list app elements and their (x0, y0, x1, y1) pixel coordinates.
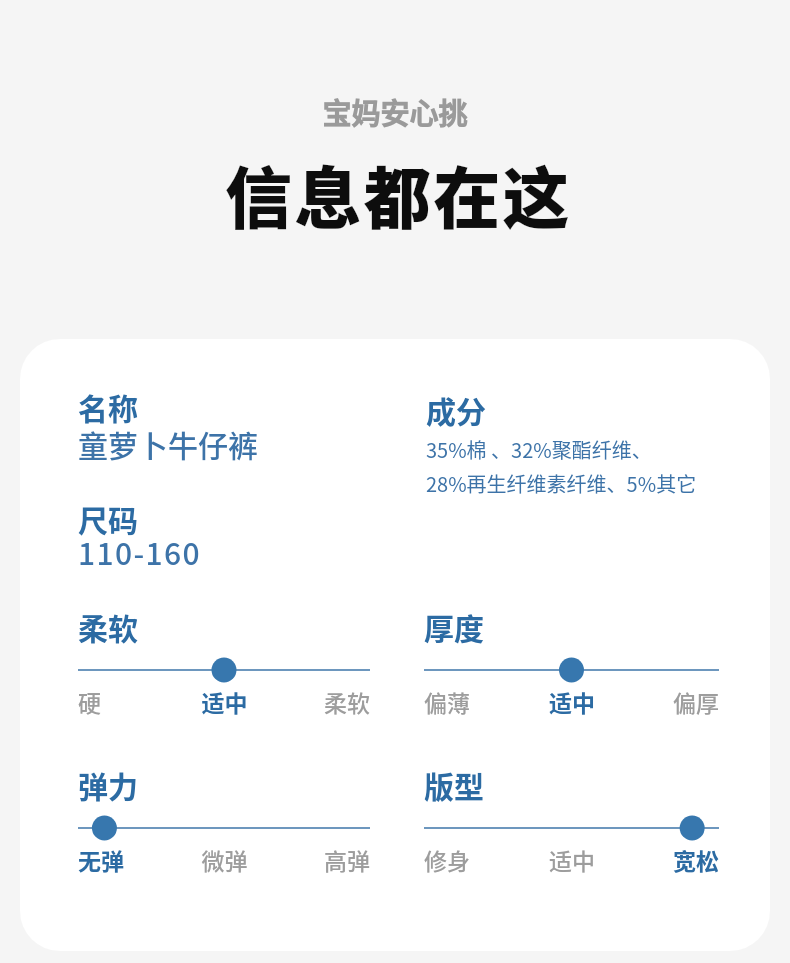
staticText: 无弹 (78, 843, 176, 876)
staticText: 信息都在这 (225, 145, 572, 242)
staticText: 硬 (78, 685, 176, 718)
staticText: 厚度 (424, 605, 484, 648)
staticText: 110-160 (78, 530, 202, 573)
staticText: 适中 (523, 685, 621, 718)
button[interactable]: 适中 (523, 685, 621, 718)
staticText: 35%棉 、32%聚酯纤维、 (426, 435, 652, 464)
button[interactable]: 厚度滑块 (424, 657, 719, 683)
button[interactable]: 宽松 (621, 843, 719, 876)
staticText: 28%再生纤维素纤维、5%其它 (426, 469, 697, 498)
staticText: 偏厚 (621, 685, 719, 718)
staticText: 版型 (424, 763, 484, 806)
staticText: 弹力 (78, 763, 138, 806)
staticText: 童萝卜牛仔裤 (78, 422, 258, 465)
button[interactable]: 弹力滑块 (78, 815, 370, 841)
staticText: 适中 (523, 843, 621, 876)
staticText: 偏薄 (424, 685, 523, 718)
staticText: 高弹 (273, 843, 370, 876)
button[interactable]: 修身 (424, 843, 523, 876)
button[interactable]: 偏薄 (424, 685, 523, 718)
staticText: 柔软 (273, 685, 370, 718)
staticText: 修身 (424, 843, 523, 876)
staticText: 成分 (426, 388, 486, 431)
staticText: 宽松 (621, 843, 719, 876)
staticText: 宝妈安心挑 (322, 91, 468, 133)
staticText: 柔软 (78, 605, 138, 648)
button[interactable]: 偏厚 (621, 685, 719, 718)
staticText: 尺码 (78, 497, 138, 540)
staticText: 适中 (176, 685, 273, 718)
button[interactable]: 柔软 (273, 685, 370, 718)
button[interactable]: 微弹 (176, 843, 273, 876)
staticText: 微弹 (176, 843, 273, 876)
button[interactable]: 高弹 (273, 843, 370, 876)
button[interactable]: 适中 (523, 843, 621, 876)
button[interactable]: 无弹 (78, 843, 176, 876)
button[interactable]: 版型滑块 (424, 815, 719, 841)
button[interactable]: 柔软滑块 (78, 657, 370, 683)
button[interactable]: 商品信息卡片 (20, 339, 770, 951)
button[interactable]: 硬 (78, 685, 176, 718)
button[interactable]: 适中 (176, 685, 273, 718)
staticText: 名称 (78, 385, 138, 428)
